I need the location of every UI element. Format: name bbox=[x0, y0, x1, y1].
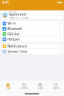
staticText: Search bbox=[53, 87, 59, 89]
staticText: Screen Time bbox=[7, 49, 27, 53]
button[interactable]: Search bbox=[48, 81, 64, 92]
button[interactable]: Wi-Fi bbox=[1, 21, 63, 26]
staticText: Jane Appleseed bbox=[9, 8, 26, 16]
button[interactable]: Apps bbox=[32, 81, 48, 92]
button[interactable]: Cellular bbox=[1, 32, 63, 37]
button[interactable]: Hotspot bbox=[1, 37, 63, 42]
staticText: Bluetooth bbox=[7, 27, 22, 31]
button[interactable]: Screen Time bbox=[1, 49, 63, 54]
button[interactable]: Notifications bbox=[1, 44, 63, 49]
staticText: Games bbox=[20, 87, 27, 89]
button[interactable]: Games bbox=[16, 81, 32, 92]
staticText: Wi-Fi bbox=[7, 22, 16, 26]
staticText: Apple ID, iCloud, Media bbox=[9, 16, 29, 22]
staticText: Apps bbox=[37, 87, 42, 89]
button[interactable]: Jane Appleseed bbox=[1, 11, 63, 19]
staticText: 9:41 bbox=[2, 1, 8, 4]
staticText: Hotspot bbox=[7, 37, 19, 41]
staticText: Notifications bbox=[7, 44, 27, 48]
staticText: Cellular bbox=[7, 32, 19, 36]
button[interactable]: Today bbox=[0, 81, 16, 92]
staticText: Today bbox=[5, 87, 10, 89]
button[interactable]: Bluetooth bbox=[1, 26, 63, 31]
